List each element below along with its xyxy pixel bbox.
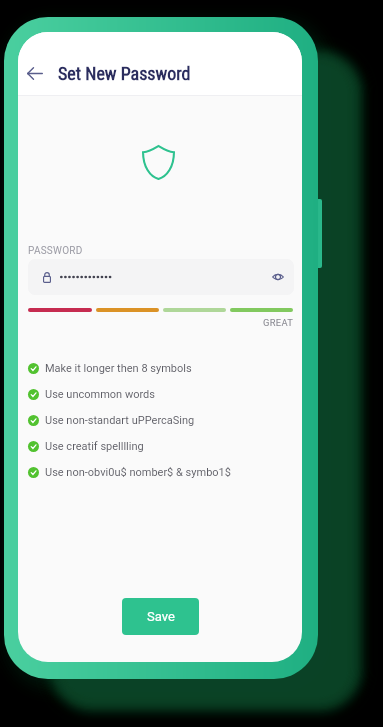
- button[interactable]: Show password: [269, 268, 287, 286]
- staticText: Use non-obvi0u$ nomber$ & symbo1$: [45, 466, 231, 479]
- button[interactable]: Save: [122, 598, 199, 635]
- button[interactable]: Show password: [28, 259, 294, 295]
- staticText: Save: [147, 609, 175, 624]
- staticText: Use non-standart uPPercaSing: [45, 414, 195, 427]
- staticText: Use creatif spelllling: [45, 440, 144, 453]
- button[interactable]: Make it longer then 8 symbols: [28, 355, 293, 381]
- staticText: GREAT: [263, 317, 294, 328]
- staticText: Make it longer then 8 symbols: [45, 362, 192, 375]
- button[interactable]: Use non-standart uPPercaSing: [28, 407, 293, 433]
- staticText: Set New Password: [58, 63, 191, 84]
- staticText: PASSWORD: [28, 245, 83, 257]
- button[interactable]: Use uncommon words: [28, 381, 293, 407]
- button[interactable]: Use creatif spelllling: [28, 433, 293, 459]
- button[interactable]: Use non-obvi0u$ nomber$ & symbo1$: [28, 459, 293, 485]
- button[interactable]: Back: [22, 62, 48, 84]
- staticText: Use uncommon words: [45, 388, 155, 401]
